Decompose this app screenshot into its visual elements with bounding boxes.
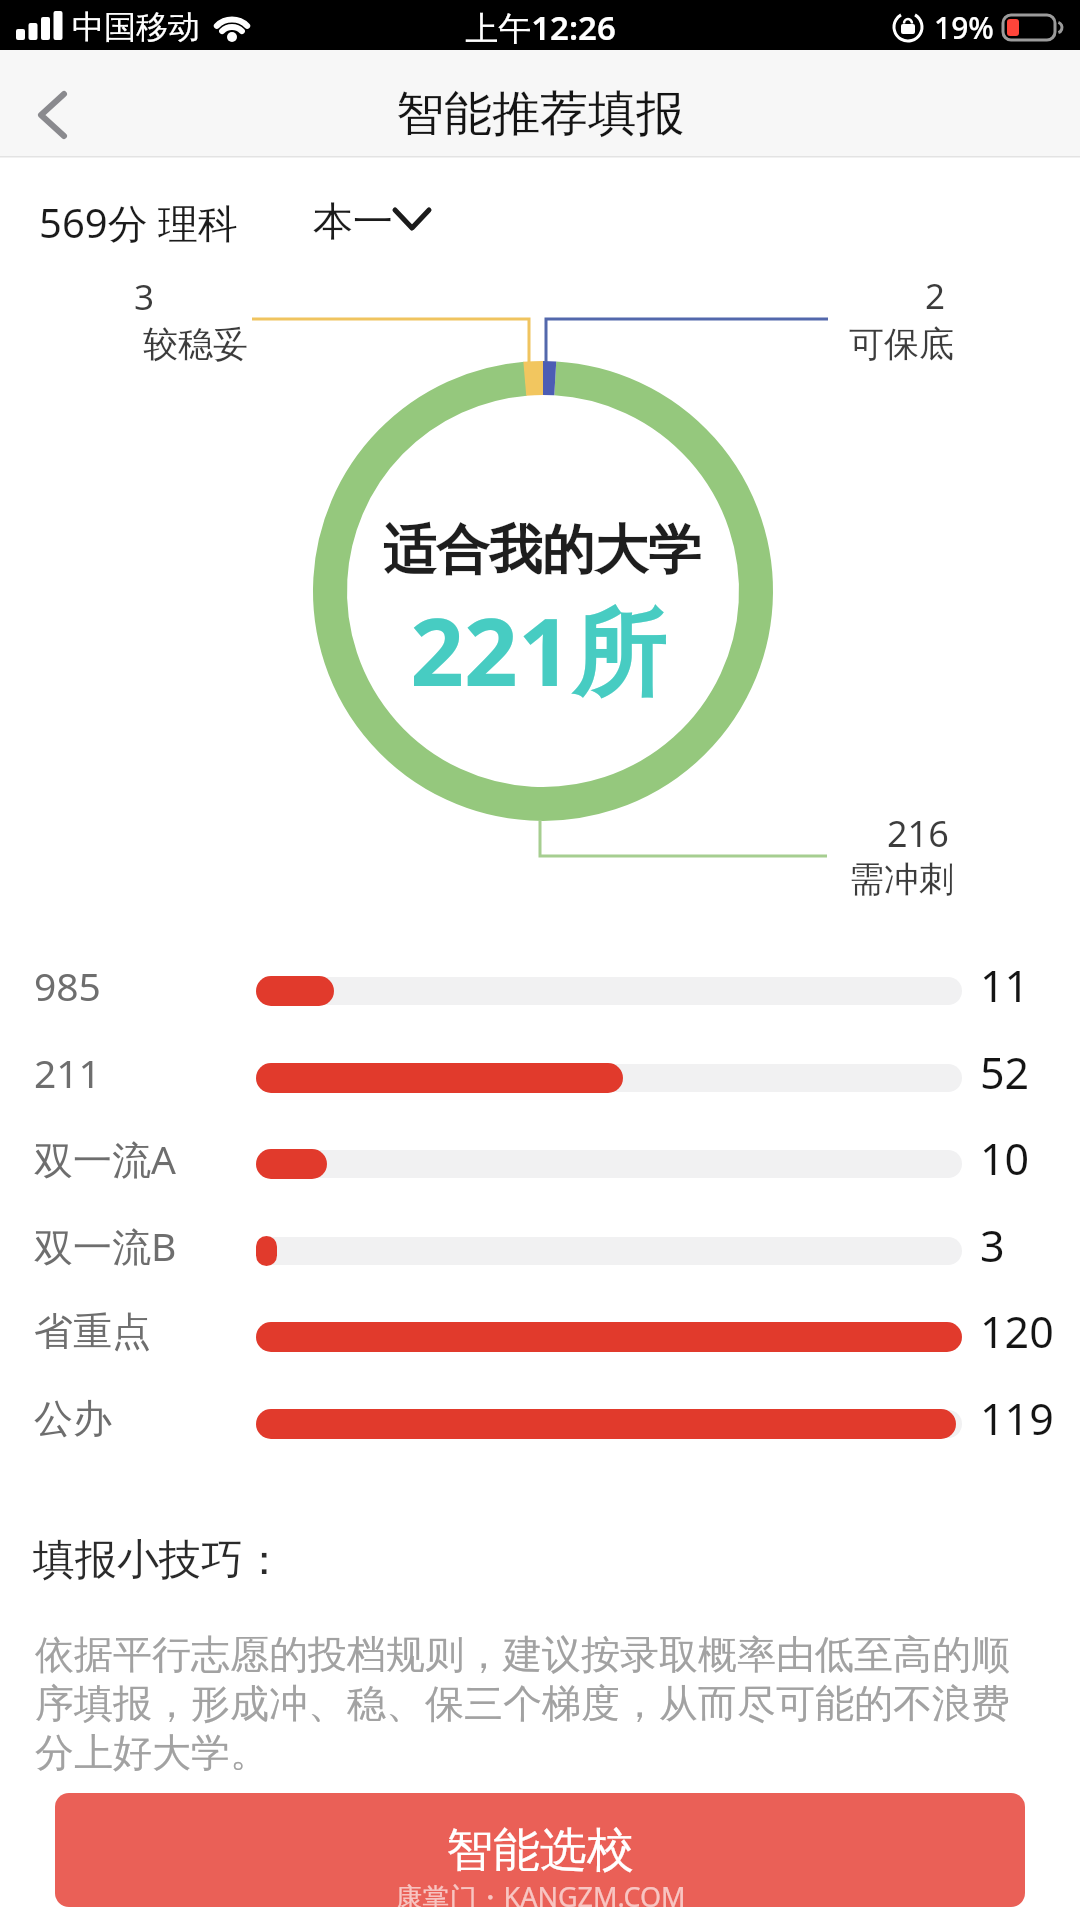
staticText: 3 [134,273,155,321]
staticText: 120 [980,1302,1054,1361]
staticText: 2 [925,272,946,320]
staticText: 216 [887,809,949,858]
button[interactable]: 智能选校 [55,1793,1025,1907]
staticText: 序填报，形成冲、稳、保三个梯度，从而尽可能的不浪费 [35,1679,1010,1728]
staticText: 119 [980,1389,1054,1448]
staticText: 智能推荐填报 [396,84,684,144]
staticText: 19% [934,7,994,48]
staticText: 中国移动 [72,7,200,47]
staticText: 较稳妥 [143,322,248,366]
staticText: 填报小技巧： [33,1534,285,1587]
staticText: 双一流B [34,1219,177,1272]
staticText: 适合我的大学 [383,517,701,584]
staticText: 52 [980,1043,1030,1102]
staticText: 上午12:26 [465,5,616,50]
staticText: 10 [980,1129,1030,1188]
staticText: 211 [34,1046,101,1099]
staticText: 569分 理科 [39,195,239,250]
staticText: 双一流A [34,1132,176,1185]
staticText: 省重点 [34,1307,151,1356]
staticText: 分上好大学。 [35,1728,269,1777]
staticText: 智能选校 [446,1821,634,1880]
staticText: 985 [34,959,101,1012]
staticText: 康掌门・KANGZM.COM [395,1878,686,1915]
staticText: 本一 [313,196,393,246]
staticText: 需冲刺 [849,857,954,901]
staticText: 221所 [410,586,666,706]
button[interactable] [20,85,86,147]
staticText: 11 [980,956,1030,1015]
staticText: 公办 [34,1394,112,1443]
staticText: 3 [980,1216,1005,1275]
staticText: 可保底 [849,322,954,366]
button[interactable]: 本一 [300,190,445,252]
staticText: 依据平行志愿的投档规则，建议按录取概率由低至高的顺 [35,1630,1010,1679]
